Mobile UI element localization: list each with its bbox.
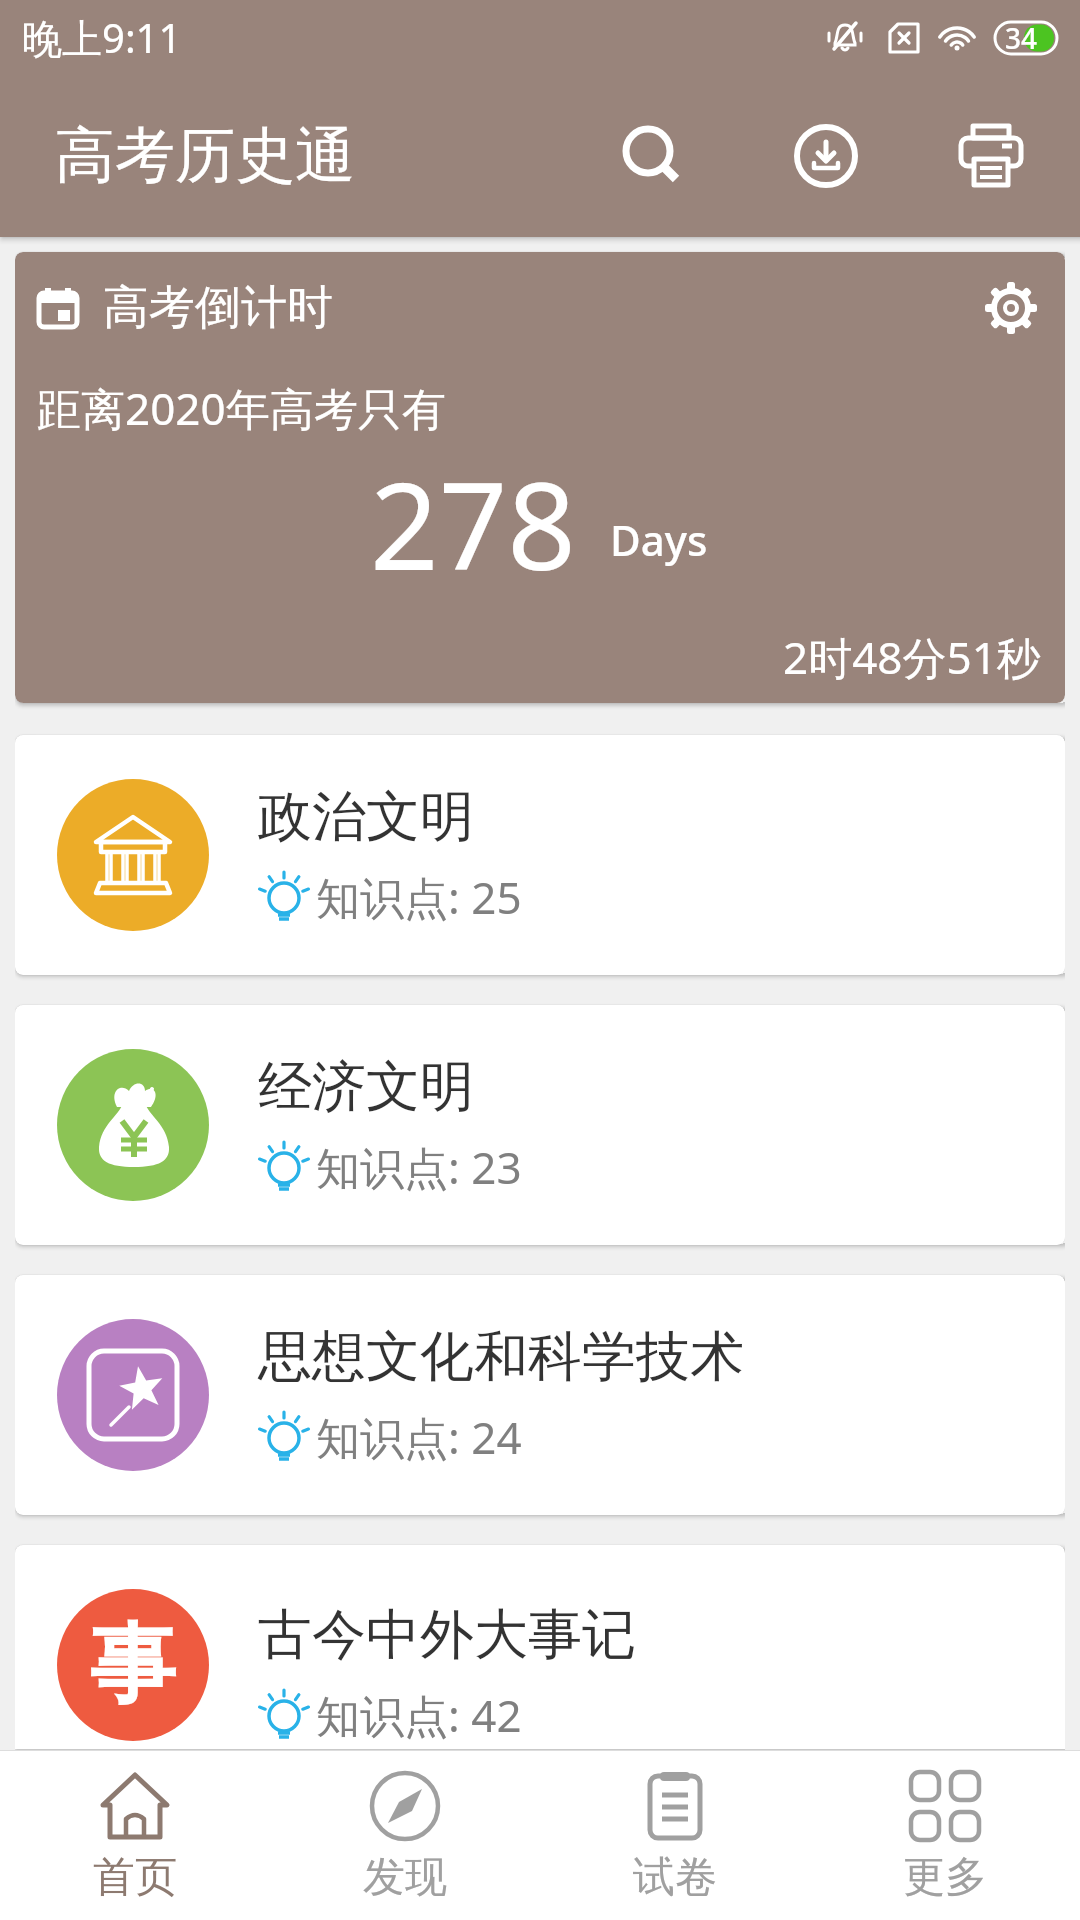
button[interactable]	[621, 124, 685, 188]
staticText: 知识点: 24	[316, 1407, 522, 1467]
staticText: 知识点: 25	[316, 867, 522, 927]
button[interactable]: 发现	[270, 1751, 540, 1920]
button[interactable]: 事	[15, 1545, 1065, 1749]
staticText: 34	[1005, 19, 1038, 57]
button[interactable]: 政治文明	[15, 735, 1065, 975]
button[interactable]: 试卷	[540, 1751, 810, 1920]
staticText: Days	[610, 511, 708, 568]
staticText: 知识点: 23	[316, 1137, 522, 1197]
staticText: 思想文化和科学技术	[258, 1323, 744, 1391]
staticText: 高考历史通	[55, 118, 355, 194]
staticText: 278	[370, 442, 576, 605]
staticText: 试卷	[633, 1851, 717, 1904]
button[interactable]	[957, 122, 1025, 190]
button[interactable]	[981, 278, 1041, 338]
staticText: 古今中外大事记	[258, 1601, 636, 1669]
staticText: 首页	[93, 1851, 177, 1904]
staticText: 更多	[903, 1851, 987, 1904]
button[interactable]: 首页	[0, 1751, 270, 1920]
staticText: 距离2020年高考只有	[37, 378, 446, 438]
staticText: 发现	[363, 1851, 447, 1904]
button[interactable]	[793, 123, 859, 189]
staticText: 事	[90, 1611, 176, 1719]
button[interactable]: 高考倒计时	[15, 252, 1065, 703]
staticText: 经济文明	[258, 1053, 474, 1121]
staticText: 政治文明	[258, 783, 474, 851]
staticText: 2时48分51秒	[783, 627, 1041, 687]
staticText: 晚上9:11	[22, 10, 182, 65]
button[interactable]: 更多	[810, 1751, 1080, 1920]
button[interactable]: 经济文明	[15, 1005, 1065, 1245]
button[interactable]: 思想文化和科学技术	[15, 1275, 1065, 1515]
staticText: 知识点: 42	[316, 1685, 522, 1745]
staticText: 高考倒计时	[103, 279, 333, 337]
